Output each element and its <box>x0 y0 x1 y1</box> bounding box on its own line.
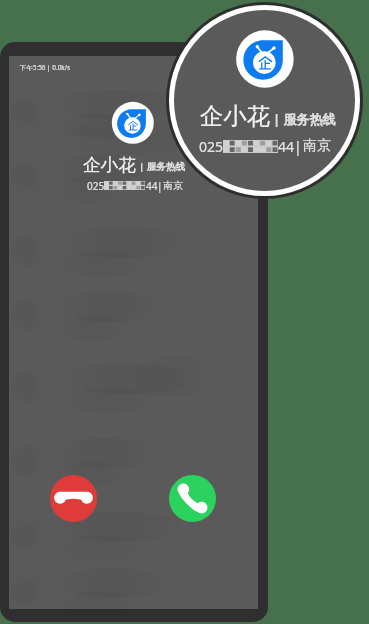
button[interactable]: Decline call <box>50 475 97 522</box>
button[interactable]: Answer call <box>169 475 216 522</box>
staticText: 下午5:56 | 0.0k/s <box>20 63 71 72</box>
staticText: 44 <box>278 137 295 156</box>
staticText: | <box>157 179 163 193</box>
staticText: 南京 <box>303 137 331 155</box>
staticText: 025 <box>199 137 224 156</box>
staticText: | 服务热线 <box>273 110 336 128</box>
staticText: 企小花 <box>200 101 271 130</box>
staticText: 南京 <box>163 179 183 192</box>
staticText: 44 <box>146 179 158 193</box>
staticText: 企小花 <box>83 154 136 176</box>
staticText: 025 <box>87 179 105 193</box>
staticText: | 服务热线 <box>139 160 186 173</box>
staticText: | <box>294 137 302 156</box>
